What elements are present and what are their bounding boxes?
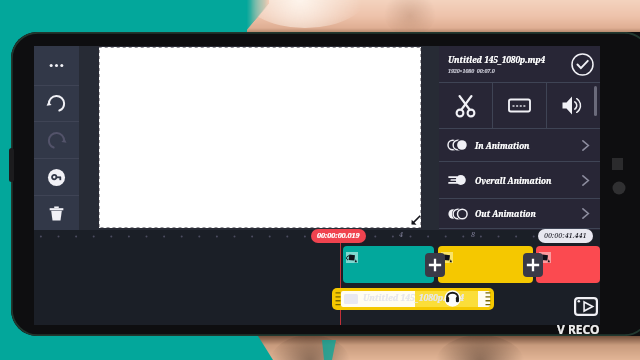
button[interactable]: Untitled 145_1080p.mp4 xyxy=(332,288,494,310)
staticText: In Animation xyxy=(475,140,530,151)
button[interactable] xyxy=(536,246,600,283)
staticText: 8 xyxy=(471,230,475,240)
button[interactable]: Done xyxy=(570,52,594,76)
staticText: 4 xyxy=(399,230,403,240)
button[interactable] xyxy=(438,246,533,283)
staticText: V RECO xyxy=(557,321,600,337)
button[interactable]: Redo xyxy=(34,122,79,158)
staticText: 1920×1080 00:07.0 xyxy=(448,67,495,74)
button[interactable]: Volume xyxy=(547,83,600,128)
button[interactable]: Out Animation xyxy=(439,199,600,228)
button[interactable]: Subtitles xyxy=(493,83,546,128)
staticText: 00:00:00.019 xyxy=(317,231,360,241)
button[interactable]: Undo xyxy=(34,86,79,121)
staticText: 00:00:41.441 xyxy=(544,231,587,241)
button[interactable]: More options xyxy=(34,46,79,85)
button[interactable]: Preview play xyxy=(574,297,598,316)
staticText: Untitled 145_1080p.mp4 xyxy=(448,54,546,65)
button[interactable]: Delete xyxy=(34,196,79,231)
staticText: Out Animation xyxy=(475,208,536,219)
button[interactable] xyxy=(343,246,434,283)
button[interactable]: Lock layer xyxy=(34,159,79,195)
staticText: Untitled 145_1080p.mp4 xyxy=(363,292,464,304)
button[interactable]: Add transition xyxy=(425,253,445,277)
staticText: Overall Animation xyxy=(475,175,552,186)
button[interactable]: Add transition xyxy=(523,253,543,277)
button[interactable]: Overall Animation xyxy=(439,162,600,198)
button[interactable]: Trim xyxy=(439,83,492,128)
button[interactable]: In Animation xyxy=(439,129,600,161)
